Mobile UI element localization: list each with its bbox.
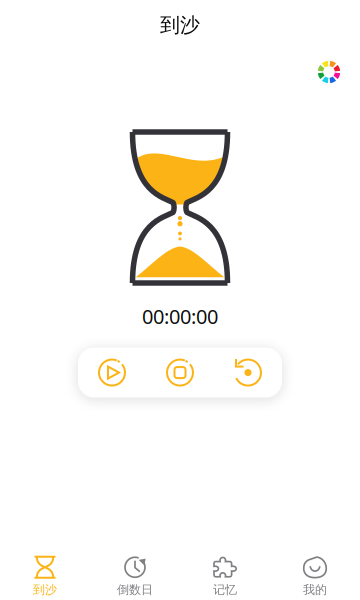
button[interactable]: 到沙: [0, 545, 90, 597]
staticText: 到沙: [33, 582, 57, 597]
button[interactable]: 倒数日: [90, 545, 180, 597]
button[interactable]: 我的: [270, 545, 360, 597]
staticText: 到沙: [160, 13, 200, 37]
staticText: 我的: [303, 582, 327, 597]
button[interactable]: Stop: [146, 348, 214, 398]
button[interactable]: Reset: [214, 348, 282, 398]
staticText: 00:00:00: [142, 303, 218, 330]
staticText: 倒数日: [117, 582, 153, 597]
button[interactable]: Start: [78, 348, 146, 398]
staticText: 记忆: [213, 582, 237, 597]
button[interactable]: 记忆: [180, 545, 270, 597]
button[interactable]: Theme colour: [312, 55, 346, 89]
